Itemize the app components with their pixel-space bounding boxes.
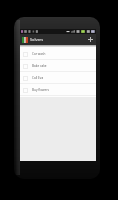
button[interactable]: Call Eva: [20, 72, 96, 84]
button[interactable]: Car wash: [20, 48, 96, 60]
button[interactable]: Add task: [85, 34, 96, 45]
button[interactable]: Bake cake: [20, 60, 96, 72]
staticText: Solvers: [30, 37, 44, 42]
staticText: Buy flowers: [32, 88, 49, 92]
staticText: Car wash: [32, 52, 46, 56]
button[interactable]: Buy flowers: [20, 84, 96, 96]
staticText: Call Eva: [32, 76, 44, 80]
staticText: Bake cake: [32, 64, 47, 68]
